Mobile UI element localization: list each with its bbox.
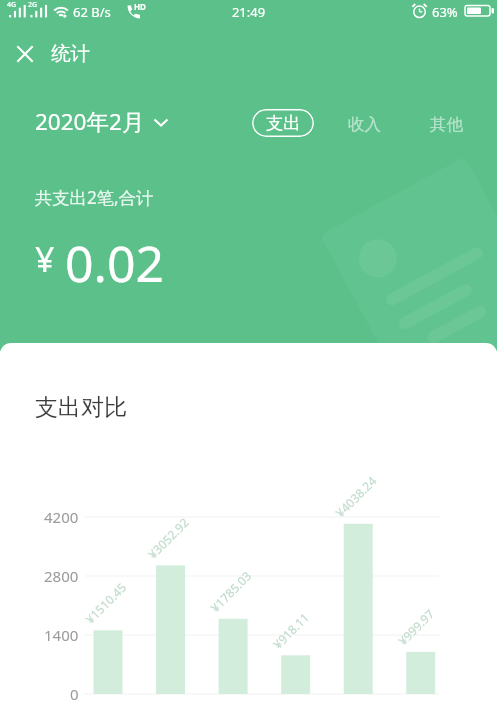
staticText: 收入 <box>348 114 381 135</box>
staticText: 共支出2笔,合计 <box>35 186 154 210</box>
staticText: 2G <box>28 0 38 10</box>
staticText: 2020年2月 <box>35 106 145 137</box>
staticText: ¥ <box>35 236 55 282</box>
staticText: 62 B/s <box>73 3 111 21</box>
button[interactable]: 支出 <box>252 109 314 137</box>
staticText: 4G <box>7 0 17 10</box>
button[interactable]: 收入 <box>346 110 382 138</box>
button[interactable]: 其他 <box>428 110 464 138</box>
button[interactable]: Close <box>13 42 37 66</box>
staticText: 21:49 <box>0 3 497 21</box>
staticText: HD <box>134 1 146 12</box>
staticText: 其他 <box>430 114 463 135</box>
staticText: 0.02 <box>65 229 165 297</box>
staticText: 63% <box>432 3 458 21</box>
staticText: 支出对比 <box>35 393 127 422</box>
staticText: 支出 <box>266 112 301 134</box>
button[interactable]: 2020年2月 <box>35 106 169 137</box>
staticText: 统计 <box>51 41 90 66</box>
